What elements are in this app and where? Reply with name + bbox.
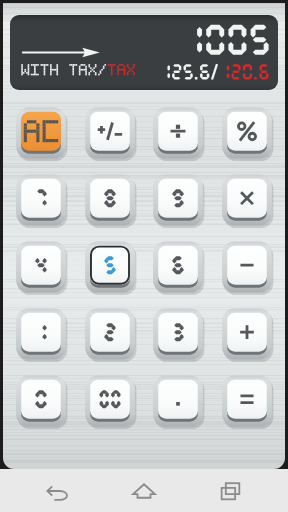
button[interactable]: Back [29, 471, 87, 511]
button[interactable]: % [217, 101, 277, 165]
button[interactable]: 00 [80, 369, 140, 433]
button[interactable]: . [148, 369, 208, 433]
button[interactable]: 6 [148, 235, 208, 299]
button[interactable]: 2 [80, 302, 140, 366]
button[interactable]: 4 [11, 235, 71, 299]
button[interactable]: + [217, 302, 277, 366]
button[interactable]: 7 [11, 168, 71, 232]
button[interactable]: 9 [148, 168, 208, 232]
button[interactable]: Recent apps [202, 471, 260, 511]
button[interactable]: 8 [80, 168, 140, 232]
button[interactable]: 5 [80, 235, 140, 299]
button[interactable]: 0 [11, 369, 71, 433]
button[interactable]: +/- [80, 101, 140, 165]
button[interactable]: Divide [148, 101, 208, 165]
button[interactable]: 3 [148, 302, 208, 366]
button[interactable]: - [217, 235, 277, 299]
button[interactable]: x [217, 168, 277, 232]
button[interactable]: = [217, 369, 277, 433]
button[interactable]: 1 [11, 302, 71, 366]
button[interactable]: AC [11, 101, 71, 165]
button[interactable]: Home [115, 471, 173, 511]
